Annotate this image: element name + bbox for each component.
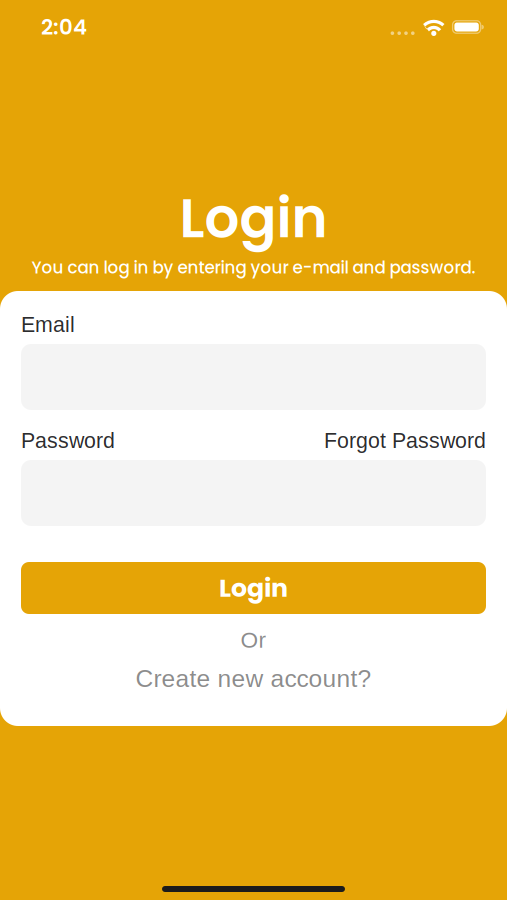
button[interactable]: Login bbox=[21, 562, 486, 614]
staticText: Login bbox=[219, 570, 288, 606]
button[interactable]: Create new account? bbox=[21, 668, 486, 689]
button[interactable]: Forgot Password bbox=[324, 429, 486, 452]
staticText: Email bbox=[21, 313, 75, 336]
staticText: Forgot Password bbox=[324, 429, 486, 452]
staticText: Password bbox=[21, 429, 115, 452]
staticText: Create new account? bbox=[135, 665, 371, 692]
staticText: You can log in by entering your e-mail a… bbox=[31, 256, 475, 279]
staticText: 2:04 bbox=[41, 12, 87, 42]
staticText: Or bbox=[240, 627, 266, 653]
staticText: Login bbox=[179, 180, 327, 256]
